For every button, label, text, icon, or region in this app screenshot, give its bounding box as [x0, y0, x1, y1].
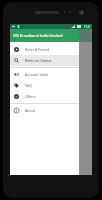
button[interactable]: SSS Broadband India Limited — [10, 29, 79, 42]
staticText: FAQ — [25, 83, 32, 88]
staticText: About — [25, 108, 36, 113]
button[interactable]: FAQ — [10, 80, 79, 91]
button[interactable]: Account Sales — [10, 69, 79, 80]
button[interactable]: Offers — [10, 91, 79, 102]
staticText: Refer on Status — [25, 58, 52, 63]
button[interactable]: Refer A Friend — [10, 44, 79, 55]
button[interactable]: Refer on Status — [10, 55, 79, 66]
staticText: SSS Broadband India Limited — [13, 33, 63, 38]
staticText: Account Sales — [25, 72, 49, 77]
staticText: 11:5 — [84, 25, 90, 29]
staticText: Refer A Friend — [25, 47, 49, 52]
button[interactable]: About — [10, 105, 79, 116]
staticText: Offers — [25, 94, 36, 99]
